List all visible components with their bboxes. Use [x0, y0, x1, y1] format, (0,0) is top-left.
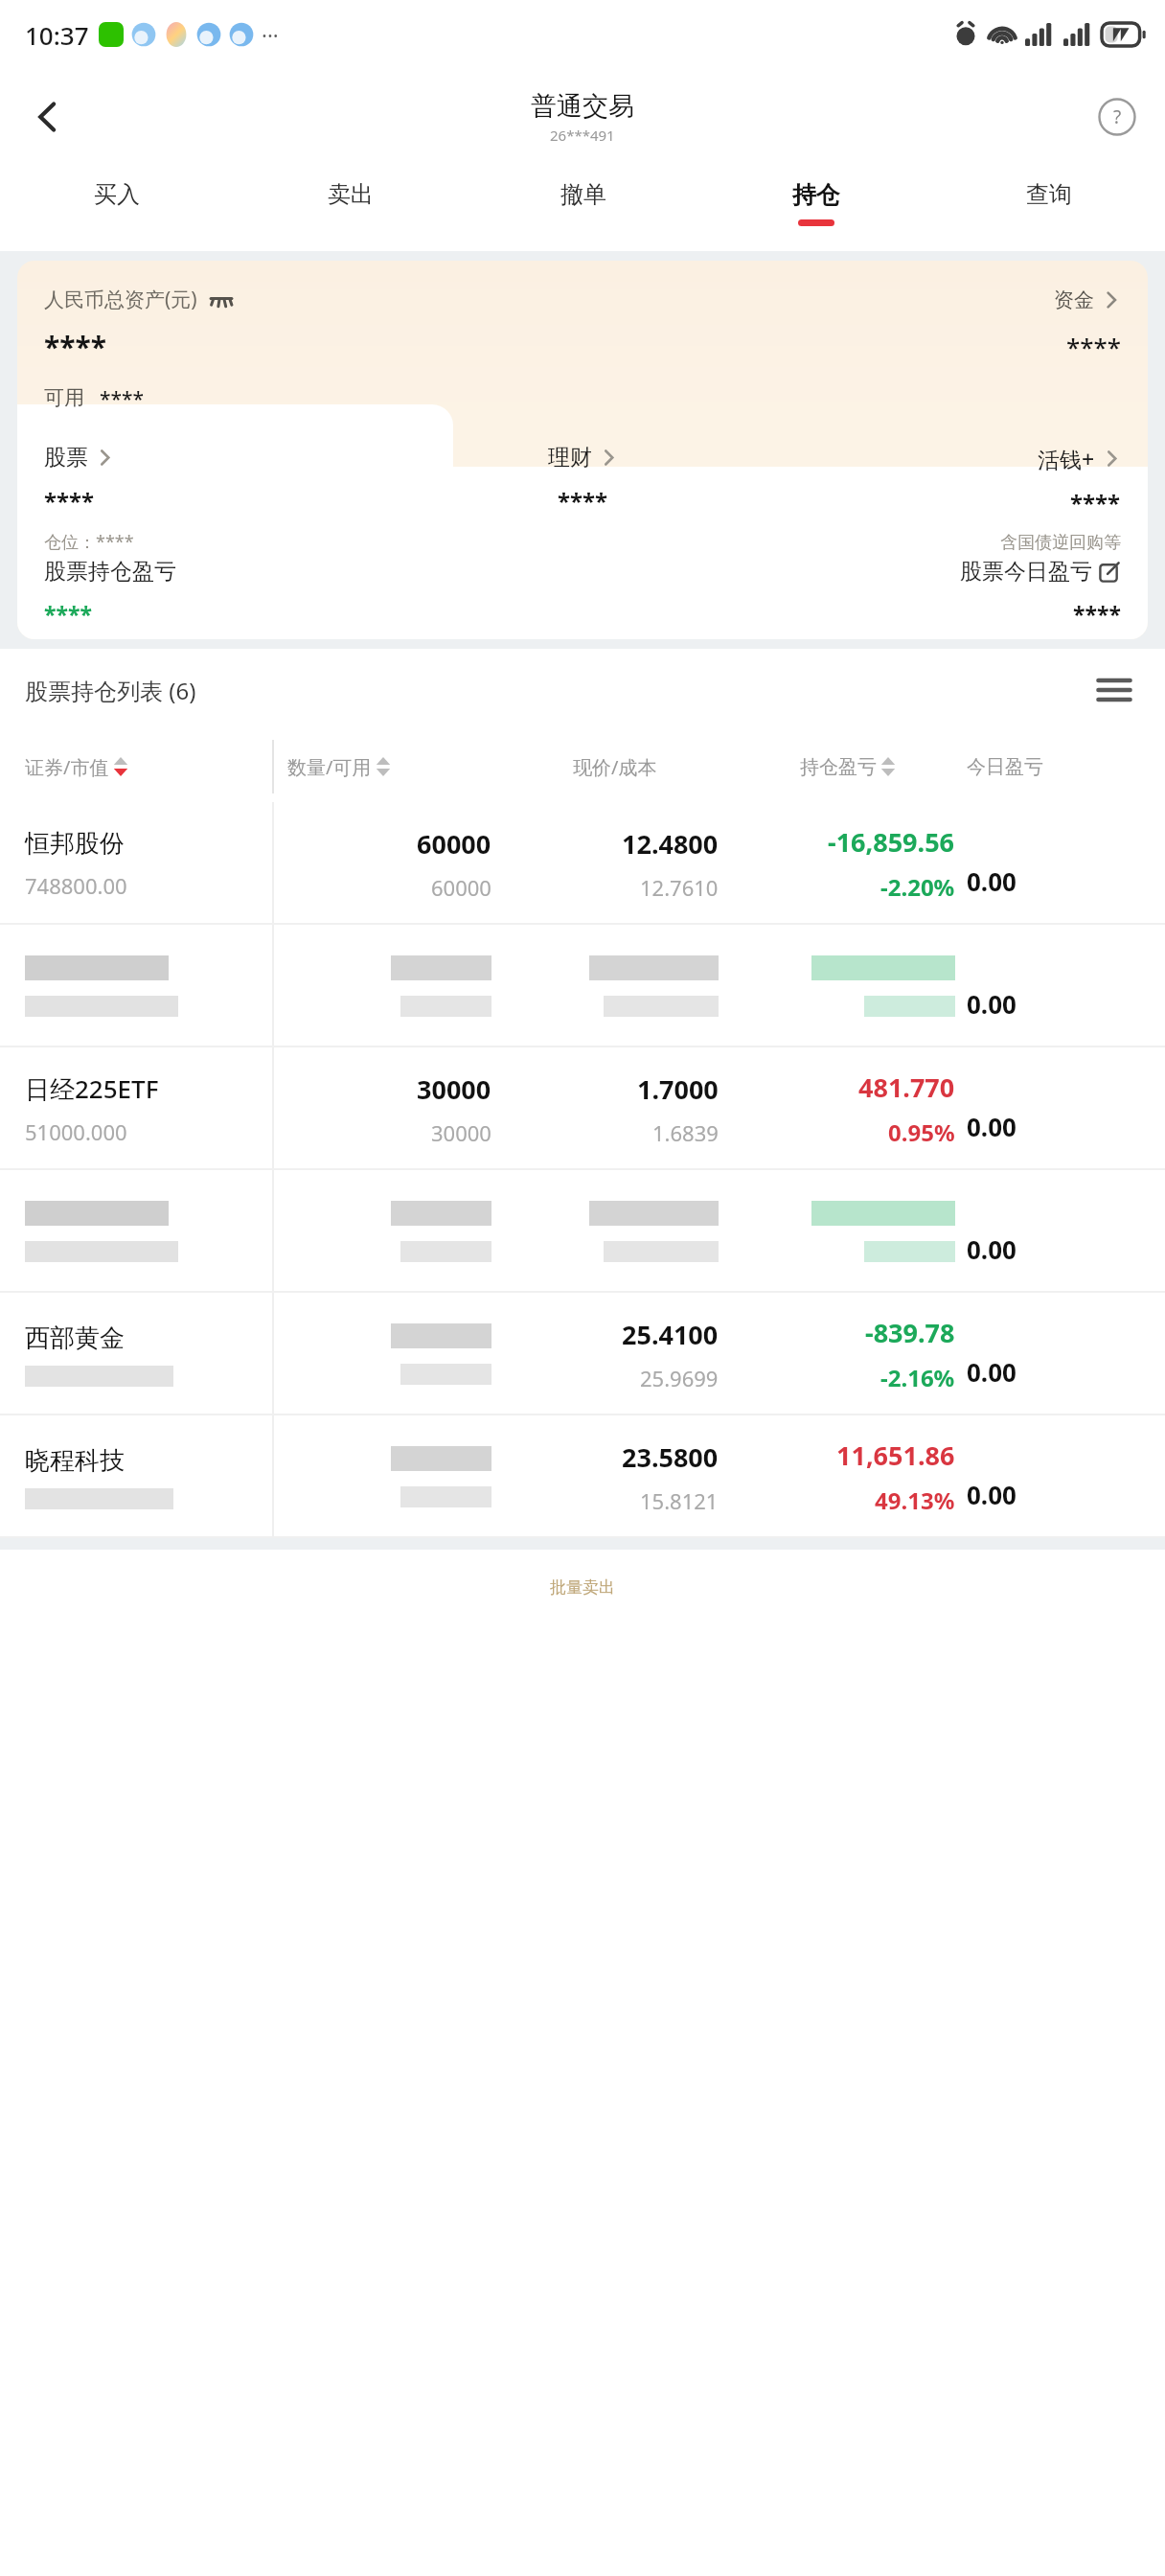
- button[interactable]: Toggle visibility: [209, 287, 234, 312]
- staticText: 含国债逆回购等: [1000, 532, 1121, 554]
- staticText: 60000: [431, 873, 491, 902]
- staticText: 仓位：****: [44, 530, 134, 554]
- staticText: 748800.00: [25, 871, 127, 900]
- staticText: 11,651.86: [836, 1437, 955, 1473]
- staticText: ****: [44, 599, 92, 629]
- staticText: 股票持仓列表 (6): [25, 675, 196, 706]
- staticText: 批量卖出: [550, 1577, 615, 1598]
- button[interactable]: 撤单: [467, 165, 699, 251]
- staticText: 日经225ETF: [25, 1071, 159, 1106]
- staticText: 股票今日盈亏: [960, 558, 1092, 586]
- staticText: 普通交易: [531, 90, 634, 123]
- staticText: 12.7610: [640, 873, 719, 902]
- staticText: ****: [558, 485, 608, 517]
- staticText: 481.770: [858, 1069, 955, 1105]
- staticText: 10:37: [25, 18, 89, 52]
- staticText: 25.9699: [640, 1364, 719, 1392]
- staticText: 可用: [44, 385, 84, 410]
- staticText: 撤单: [560, 180, 606, 209]
- staticText: 60000: [417, 826, 491, 862]
- staticText: 查询: [1026, 180, 1072, 209]
- staticText: 0.00: [967, 1232, 1017, 1266]
- staticText: 资金: [1054, 287, 1094, 312]
- button[interactable]: 晓程科技: [0, 1415, 1165, 1538]
- button[interactable]: Back: [17, 86, 79, 148]
- staticText: 买入: [94, 180, 140, 209]
- button[interactable]: 0.00: [0, 925, 1165, 1047]
- staticText: 23.5800: [622, 1439, 719, 1475]
- staticText: 晓程科技: [25, 1445, 125, 1477]
- button[interactable]: 活钱+: [771, 438, 1148, 558]
- staticText: 西部黄金: [25, 1322, 125, 1354]
- staticText: 25.4100: [622, 1317, 719, 1352]
- staticText: ****: [1070, 487, 1121, 518]
- button[interactable]: List options: [1088, 664, 1140, 716]
- staticText: -2.20%: [880, 871, 955, 903]
- button[interactable]: 卖出: [234, 165, 467, 251]
- button[interactable]: 恒邦股份: [0, 802, 1165, 925]
- staticText: 15.8121: [640, 1486, 719, 1515]
- staticText: 0.00: [967, 987, 1017, 1021]
- staticText: 理财: [548, 444, 592, 471]
- staticText: -2.16%: [880, 1362, 955, 1393]
- staticText: 恒邦股份: [25, 828, 125, 860]
- staticText: 0.00: [967, 1355, 1017, 1389]
- staticText: 证券/市值: [25, 754, 109, 780]
- button[interactable]: Help: [1088, 88, 1146, 146]
- staticText: 人民币总资产(元): [44, 286, 197, 313]
- staticText: 51000.000: [25, 1117, 127, 1146]
- staticText: 0.00: [967, 1110, 1017, 1143]
- staticText: ****: [100, 385, 145, 413]
- staticText: ****: [44, 327, 107, 366]
- staticText: 0.95%: [888, 1116, 955, 1148]
- staticText: 持仓: [792, 180, 840, 210]
- button[interactable]: 日经225ETF: [0, 1047, 1165, 1170]
- staticText: ···: [262, 20, 279, 49]
- button[interactable]: 西部黄金: [0, 1293, 1165, 1415]
- button[interactable]: 查询: [932, 165, 1165, 251]
- staticText: 30000: [417, 1071, 491, 1107]
- staticText: 活钱+: [1038, 444, 1095, 473]
- staticText: -16,859.56: [828, 824, 955, 860]
- button[interactable]: 0.00: [0, 1170, 1165, 1293]
- staticText: 持仓盈亏: [800, 755, 877, 779]
- button[interactable]: 股票: [17, 438, 395, 558]
- button[interactable]: 股票今日盈亏: [960, 558, 1121, 586]
- staticText: -839.78: [865, 1315, 955, 1350]
- button[interactable]: 买入: [0, 165, 234, 251]
- staticText: ****: [1066, 330, 1121, 363]
- staticText: 今日盈亏: [967, 755, 1043, 779]
- button[interactable]: 理财: [395, 438, 771, 558]
- staticText: 股票: [44, 444, 88, 471]
- staticText: 26***491: [550, 126, 615, 145]
- staticText: 数量/可用: [287, 754, 372, 780]
- staticText: 卖出: [328, 180, 374, 209]
- staticText: 0.00: [967, 864, 1017, 898]
- staticText: 12.4800: [622, 826, 719, 862]
- button[interactable]: 批量卖出: [0, 1550, 1165, 1624]
- staticText: 股票持仓盈亏: [44, 558, 176, 586]
- button[interactable]: 资金: [1054, 287, 1121, 312]
- staticText: 1.7000: [637, 1071, 719, 1107]
- staticText: 0.00: [967, 1478, 1017, 1511]
- staticText: ****: [1073, 599, 1121, 629]
- button[interactable]: 持仓: [699, 165, 932, 251]
- staticText: 1.6839: [652, 1118, 719, 1147]
- staticText: 49.13%: [875, 1484, 955, 1516]
- staticText: 30000: [431, 1118, 491, 1147]
- staticText: 现价/成本: [573, 754, 657, 780]
- staticText: ?: [1113, 104, 1122, 129]
- staticText: ****: [44, 485, 95, 517]
